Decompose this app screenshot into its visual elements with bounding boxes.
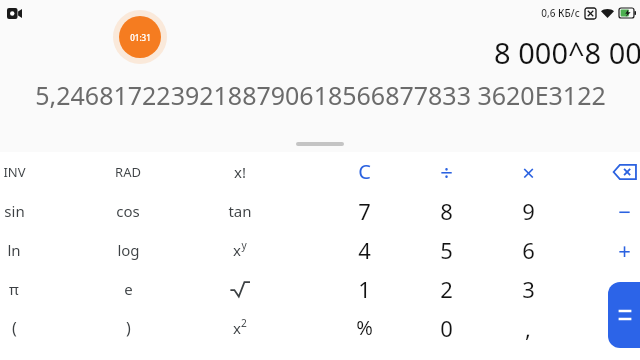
staticText: ÷	[440, 157, 453, 187]
button[interactable]: INV	[0, 152, 51, 191]
staticText: (	[12, 317, 17, 339]
button[interactable]: ln	[0, 230, 51, 269]
staticText: x	[233, 240, 241, 260]
button[interactable]: 6	[491, 230, 565, 269]
staticText: )	[126, 317, 131, 339]
staticText: ,	[525, 313, 531, 343]
staticText: 6	[522, 235, 535, 265]
staticText: C	[358, 158, 371, 185]
button[interactable]: 2	[409, 269, 483, 308]
button[interactable]: Equals	[608, 282, 640, 348]
button[interactable]: Square root	[203, 269, 277, 308]
staticText: e	[124, 279, 133, 299]
button[interactable]: 7	[327, 191, 401, 230]
button[interactable]: x	[203, 308, 277, 347]
button[interactable]: tan	[203, 191, 277, 230]
button[interactable]: x!	[203, 152, 277, 191]
staticText: 1	[358, 274, 371, 304]
button[interactable]: +	[587, 230, 640, 269]
button[interactable]: 4	[327, 230, 401, 269]
staticText: x	[233, 318, 241, 338]
staticText: 0	[440, 313, 453, 343]
button[interactable]: C	[327, 152, 401, 191]
button[interactable]: x	[203, 230, 277, 269]
button[interactable]: sin	[0, 191, 51, 230]
button[interactable]: %	[327, 308, 401, 347]
staticText: ln	[7, 240, 21, 260]
staticText: 4	[358, 235, 371, 265]
button[interactable]: ×	[491, 152, 565, 191]
staticText: 3	[522, 274, 535, 304]
staticText: −	[618, 196, 631, 226]
staticText: ×	[522, 157, 535, 187]
staticText: 7	[358, 196, 371, 226]
button[interactable]: e	[91, 269, 165, 308]
button[interactable]	[296, 142, 344, 146]
staticText: y	[241, 238, 247, 252]
button[interactable]: π	[0, 269, 51, 308]
staticText: 2	[241, 316, 247, 330]
button[interactable]: Backspace	[587, 152, 640, 191]
staticText: tan	[228, 201, 252, 221]
button[interactable]: 0	[409, 308, 483, 347]
staticText: 0,6 КБ/с	[541, 6, 580, 20]
button[interactable]: Equals	[587, 308, 640, 347]
staticText: 01:31	[130, 32, 151, 43]
button[interactable]: ,	[491, 308, 565, 347]
button[interactable]: 8	[409, 191, 483, 230]
staticText: sin	[4, 201, 25, 221]
staticText: 8 000^8 00	[494, 33, 640, 72]
button[interactable]: 1	[327, 269, 401, 308]
staticText: INV	[3, 163, 26, 181]
button[interactable]: RAD	[91, 152, 165, 191]
staticText: 2	[440, 274, 453, 304]
staticText: 5,24681722392188790618566877833 3620E312…	[35, 78, 606, 112]
staticText: log	[117, 240, 140, 260]
staticText: RAD	[115, 163, 141, 181]
staticText: %	[356, 314, 373, 341]
staticText: π	[9, 279, 19, 299]
button[interactable]: ÷	[409, 152, 483, 191]
staticText: 5	[440, 235, 453, 265]
staticText: 9	[522, 196, 535, 226]
staticText: cos	[116, 201, 140, 221]
button[interactable]: log	[91, 230, 165, 269]
button[interactable]: −	[587, 191, 640, 230]
button[interactable]: Equals	[587, 269, 640, 308]
button[interactable]: (	[0, 308, 51, 347]
button[interactable]: cos	[91, 191, 165, 230]
staticText: x!	[234, 162, 246, 182]
button[interactable]: 5	[409, 230, 483, 269]
button[interactable]: 9	[491, 191, 565, 230]
button[interactable]: )	[91, 308, 165, 347]
staticText: +	[618, 235, 631, 265]
staticText: 8	[440, 196, 453, 226]
button[interactable]: 3	[491, 269, 565, 308]
